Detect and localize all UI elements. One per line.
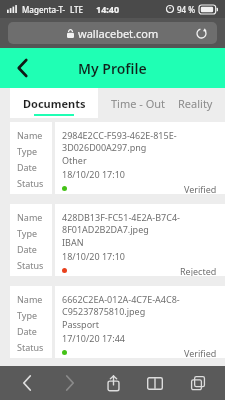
staticText: Reality xyxy=(178,96,213,111)
staticText: Date xyxy=(17,161,37,173)
button[interactable]: Documents xyxy=(10,88,98,118)
staticText: 2984E2CC-F593-462E-815E- xyxy=(62,129,177,141)
button[interactable]: Reality xyxy=(178,88,225,118)
staticText: LTE xyxy=(70,4,84,15)
staticText: C95237875810.jpeg xyxy=(62,305,146,317)
staticText: Date xyxy=(17,243,37,255)
staticText: Other xyxy=(62,154,87,166)
button[interactable]: Name xyxy=(10,122,225,194)
staticText: wallacebet.com xyxy=(78,26,159,41)
staticText: Name xyxy=(17,129,43,141)
staticText: 8F01AD2B2DA7.jpeg xyxy=(62,223,149,235)
staticText: 94 % xyxy=(177,4,196,15)
staticText: Magenta-T- xyxy=(22,4,66,15)
staticText: Name xyxy=(17,293,43,305)
staticText: Passport xyxy=(62,318,100,330)
staticText: 17/10/20 17:44 xyxy=(62,332,125,344)
button[interactable]: Name xyxy=(10,204,225,276)
staticText: 14:40 xyxy=(96,3,120,15)
staticText: Name xyxy=(17,211,43,223)
button[interactable]: Bookmarks xyxy=(140,368,170,398)
staticText: Documents xyxy=(23,96,86,111)
staticText: Status xyxy=(17,259,44,271)
button[interactable]: Tabs xyxy=(183,368,213,398)
staticText: 428DB13F-FC51-4E2A-B7C4- xyxy=(62,211,180,223)
button[interactable]: Name xyxy=(10,286,225,358)
staticText: 3D026D00A297.png xyxy=(62,141,147,153)
staticText: Rejected xyxy=(180,265,217,276)
staticText: Type xyxy=(17,309,38,321)
button[interactable]: Back xyxy=(12,368,42,398)
staticText: 18/10/20 17:10 xyxy=(62,168,125,180)
staticText: 6662C2EA-012A-4C7E-A4C8- xyxy=(62,293,180,305)
button[interactable]: Time - Out xyxy=(98,88,178,118)
staticText: Time - Out xyxy=(111,96,166,111)
staticText: Date xyxy=(17,325,37,337)
button[interactable]: Share xyxy=(98,368,128,398)
staticText: Status xyxy=(17,177,44,189)
staticText: Verified xyxy=(184,347,217,358)
button[interactable]: Back xyxy=(8,54,36,82)
staticText: Verified xyxy=(184,183,217,194)
staticText: IBAN xyxy=(62,236,84,248)
staticText: Type xyxy=(17,145,38,157)
button[interactable]: wallacebet.com xyxy=(8,22,217,44)
button[interactable]: Reload xyxy=(193,25,209,41)
staticText: Type xyxy=(17,227,38,239)
staticText: Status xyxy=(17,341,44,353)
staticText: My Profile xyxy=(78,59,147,78)
staticText: 18/10/20 17:10 xyxy=(62,250,125,262)
button[interactable]: Forward xyxy=(55,368,85,398)
